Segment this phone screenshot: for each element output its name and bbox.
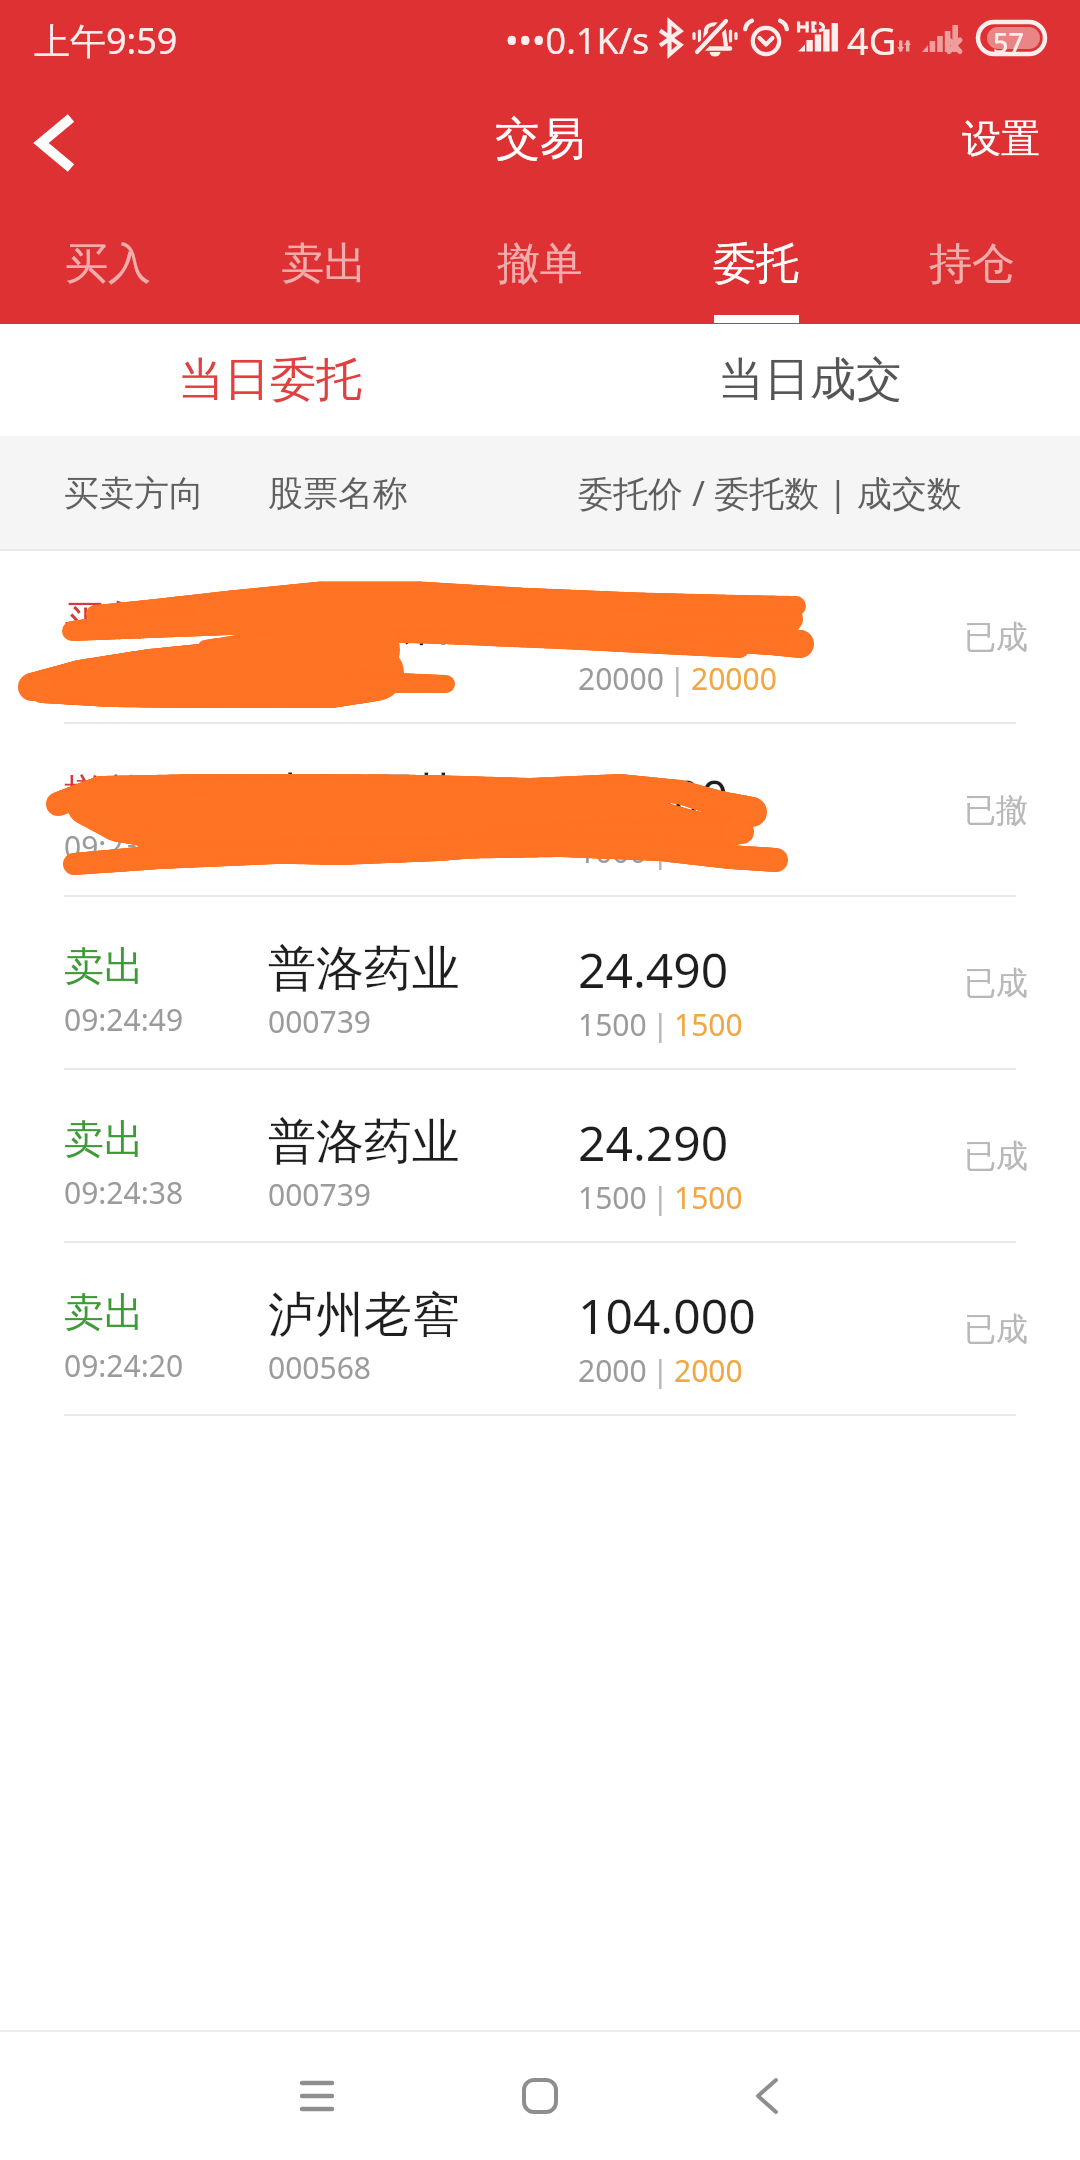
staticText: 设置	[962, 114, 1040, 163]
staticText: 000739	[268, 1001, 371, 1042]
staticText: 买入	[64, 595, 144, 645]
staticText: 104.000	[578, 1283, 756, 1348]
staticText: 当日委托	[178, 351, 362, 409]
staticText: 普洛药业	[268, 939, 460, 999]
staticText: 已成	[964, 1136, 1028, 1176]
staticText: 1500	[578, 1177, 647, 1218]
button[interactable]: 持仓	[864, 206, 1080, 324]
staticText: 20000	[578, 658, 664, 699]
button[interactable]: 买入	[0, 206, 216, 324]
staticText: 上午9:59	[34, 16, 178, 65]
staticText: 1500	[578, 1004, 647, 1045]
staticText: 18.000	[578, 764, 729, 829]
staticText: 已成	[964, 963, 1028, 1003]
staticText: 委托	[713, 237, 799, 291]
staticText: 09:23:02	[64, 826, 184, 867]
staticText: 卖出	[64, 1114, 144, 1164]
staticText: 撤单	[497, 237, 583, 291]
staticText: 0	[674, 831, 692, 872]
button[interactable]: 卖出	[0, 1243, 1080, 1414]
staticText: 20000	[691, 658, 777, 699]
staticText: 普洛药业	[268, 1112, 460, 1172]
button[interactable]: 设置	[922, 80, 1080, 206]
staticText: |	[647, 1177, 674, 1218]
staticText: 09:25:02	[64, 653, 184, 694]
button[interactable]: 卖出	[0, 1070, 1080, 1241]
staticText: 14.500	[578, 591, 729, 656]
staticText: |	[664, 658, 691, 699]
staticText: |	[647, 1004, 674, 1045]
staticText: 09:24:49	[64, 999, 184, 1040]
staticText: 中国软件	[268, 593, 460, 653]
staticText: 买入	[65, 237, 151, 291]
button[interactable]: 当日委托	[0, 324, 540, 436]
staticText: 交易	[495, 111, 585, 168]
staticText: 4G	[847, 14, 897, 66]
button[interactable]: Back	[687, 2032, 847, 2160]
staticText: 24.490	[578, 937, 729, 1002]
staticText: 卖出	[281, 237, 367, 291]
staticText: 持仓	[929, 237, 1015, 291]
staticText: 1000	[578, 831, 647, 872]
staticText: 撤单	[64, 768, 144, 818]
staticText: 股票名称	[268, 471, 408, 515]
button[interactable]: 撤单	[432, 206, 648, 324]
staticText: •••0.1K/s	[505, 16, 650, 65]
staticText: 000739	[268, 1174, 371, 1215]
staticText: 委托价 / 委托数 | 成交数	[578, 469, 962, 517]
staticText: 09:24:20	[64, 1345, 184, 1386]
button[interactable]: Recents	[237, 2032, 397, 2160]
staticText: 600056	[268, 828, 371, 869]
staticText: 卖出	[64, 1287, 144, 1337]
staticText: 09:24:38	[64, 1172, 184, 1213]
staticText: 已成	[964, 617, 1028, 657]
staticText: 1500	[674, 1004, 743, 1045]
staticText: 已成	[964, 1309, 1028, 1349]
staticText: 24.290	[578, 1110, 729, 1175]
staticText: 2000	[674, 1350, 743, 1391]
staticText: 1500	[674, 1177, 743, 1218]
button[interactable]: Back	[0, 80, 112, 206]
button[interactable]: Home	[460, 2032, 620, 2160]
staticText: 当日成交	[718, 351, 902, 409]
staticText: |	[647, 831, 674, 872]
staticText: 卖出	[64, 941, 144, 991]
staticText: 已撤	[964, 790, 1028, 830]
staticText: 2000	[578, 1350, 647, 1391]
button[interactable]: 卖出	[0, 897, 1080, 1068]
staticText: 买卖方向	[64, 471, 204, 515]
button[interactable]: 委托	[648, 206, 864, 324]
staticText: 泸州老窖	[268, 1285, 460, 1345]
staticText: |	[647, 1350, 674, 1391]
staticText: 中国医药	[268, 766, 460, 826]
button[interactable]: 卖出	[216, 206, 432, 324]
staticText: 000568	[268, 1347, 371, 1388]
button[interactable]: 当日成交	[540, 324, 1080, 436]
staticText: 57	[993, 24, 1024, 61]
